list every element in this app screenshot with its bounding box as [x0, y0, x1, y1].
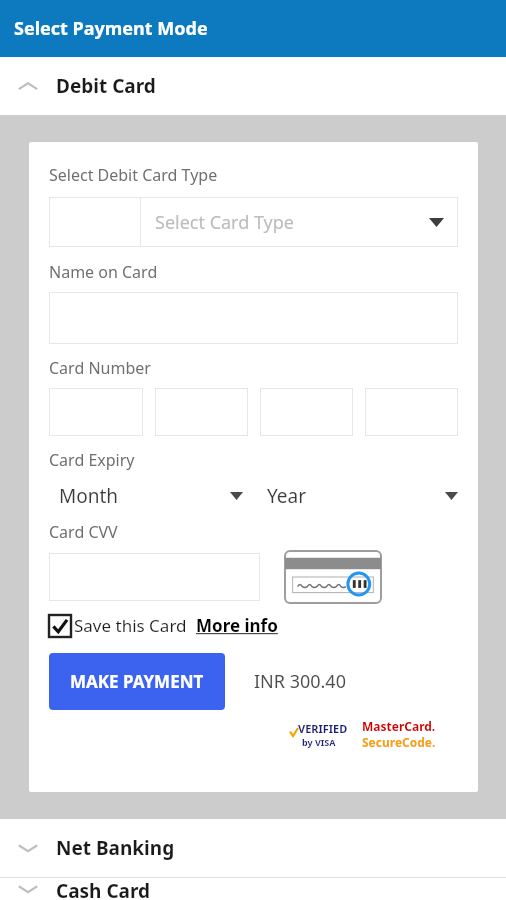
staticText: Select Debit Card Type: [49, 164, 218, 186]
button[interactable]: [155, 388, 248, 436]
staticText: Name on Card: [49, 261, 158, 283]
staticText: Debit Card: [56, 73, 156, 99]
button[interactable]: [49, 388, 143, 436]
button[interactable]: Save this Card: [49, 614, 187, 637]
other: Expand: [17, 882, 39, 896]
button[interactable]: More info: [196, 614, 278, 637]
staticText: Select Payment Mode: [14, 16, 208, 41]
button[interactable]: Collapse: [0, 57, 506, 115]
staticText: Cash Card: [56, 878, 151, 900]
staticText: Card Number: [49, 357, 151, 379]
button[interactable]: [49, 292, 458, 344]
button[interactable]: Month: [49, 477, 249, 515]
staticText: Net Banking: [56, 835, 175, 861]
button[interactable]: Expand: [0, 819, 506, 877]
staticText: INR 300.40: [254, 669, 346, 694]
button[interactable]: Year: [267, 477, 458, 515]
other: Collapse: [17, 79, 39, 93]
staticText: MasterCard.: [362, 718, 436, 734]
staticText: Month: [59, 483, 119, 509]
staticText: Card CVV: [49, 521, 118, 543]
staticText: Select Card Type: [155, 210, 429, 235]
button[interactable]: [365, 388, 458, 436]
button[interactable]: [49, 553, 260, 601]
button[interactable]: Select Card Type: [49, 197, 458, 247]
button[interactable]: MAKE PAYMENT: [49, 653, 225, 710]
staticText: Card Expiry: [49, 449, 135, 471]
button[interactable]: Expand: [0, 878, 506, 900]
staticText: MAKE PAYMENT: [70, 670, 204, 693]
staticText: VERIFIED: [298, 721, 348, 736]
staticText: Year: [267, 483, 307, 509]
staticText: SecureCode.: [362, 734, 436, 750]
staticText: Save this Card: [74, 614, 187, 637]
button[interactable]: [260, 388, 353, 436]
other: Expand: [17, 841, 39, 855]
staticText: by VISA: [302, 736, 336, 748]
